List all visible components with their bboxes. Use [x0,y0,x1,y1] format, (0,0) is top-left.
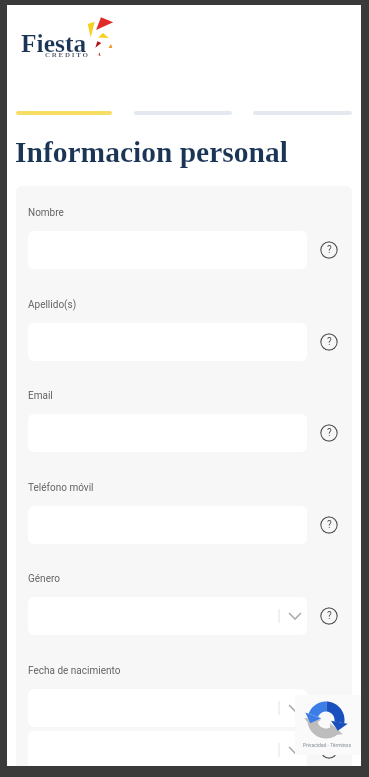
staticText: Email [28,390,53,402]
staticText: Informacion personal [15,136,288,169]
button[interactable]: Ayuda [320,699,338,717]
button[interactable] [28,597,307,635]
staticText: Apellido(s) [28,299,77,311]
button[interactable]: Ayuda [320,241,338,259]
button[interactable] [28,689,307,727]
staticText: Teléfono móvil [28,482,94,494]
staticText: ? [327,336,332,348]
staticText: Fiesta [21,29,87,57]
button[interactable] [28,731,307,766]
staticText: Privacidad - Términos [303,742,352,748]
button[interactable]: Ayuda [320,424,338,442]
button[interactable]: Ayuda [320,607,338,625]
staticText: ? [327,744,332,756]
staticText: C R E D I T O [45,51,88,59]
button[interactable]: reCAPTCHA [295,695,361,755]
button[interactable]: Ayuda [320,741,338,759]
staticText: Fecha de nacimiento [28,665,121,677]
staticText: ? [327,702,332,714]
staticText: ? [327,610,332,622]
staticText: ? [327,427,332,439]
button[interactable]: Ayuda [320,516,338,534]
button[interactable]: Ayuda [320,333,338,351]
staticText: ? [327,519,332,531]
staticText: Nombre [28,207,64,219]
staticText: ? [327,244,332,256]
staticText: Género [28,573,60,585]
